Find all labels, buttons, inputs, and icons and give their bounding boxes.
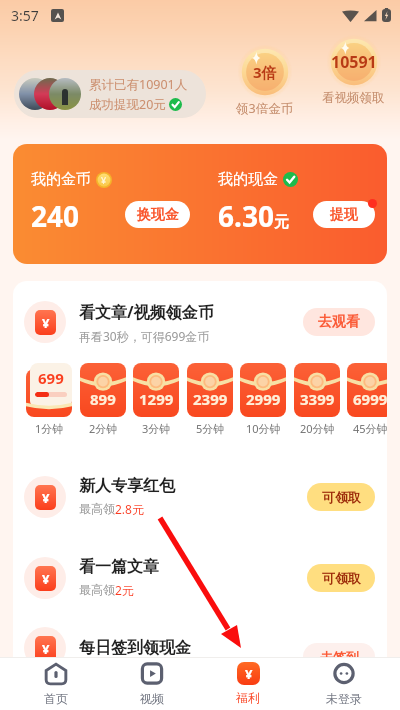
staticText: 2399 xyxy=(193,389,228,409)
button[interactable]: ¥ xyxy=(13,459,387,534)
staticText: 6999 xyxy=(353,389,387,409)
button[interactable]: 可领取 xyxy=(307,564,375,592)
staticText: 2分钟 xyxy=(89,421,118,436)
staticText: ¥ xyxy=(42,570,50,588)
staticText: 1299 xyxy=(139,389,174,409)
button[interactable]: 去签到 xyxy=(303,643,375,657)
staticText: 2999 xyxy=(246,389,281,409)
staticText: ¥ xyxy=(42,314,50,332)
button[interactable]: 未登录 xyxy=(304,662,384,706)
button[interactable]: 899 xyxy=(80,363,126,417)
staticText: 领3倍金币 xyxy=(236,100,294,117)
staticText: 再看30秒，可得699金币 xyxy=(79,328,210,344)
button[interactable]: 提现 xyxy=(313,201,375,228)
staticText: 我的现金 xyxy=(218,170,278,189)
staticText: 去观看 xyxy=(318,313,360,331)
button[interactable]: 福利 xyxy=(208,662,288,705)
staticText: 3:57 xyxy=(11,6,39,25)
button[interactable]: 2999 xyxy=(240,363,286,417)
staticText: 看一篇文章 xyxy=(79,557,159,577)
staticText: 成功提现20元 xyxy=(89,96,166,113)
button[interactable]: 可领取 xyxy=(307,483,375,511)
staticText: 看文章/视频领金币 xyxy=(79,301,214,323)
staticText: 元 xyxy=(274,213,289,232)
staticText: 10分钟 xyxy=(246,421,281,436)
staticText: 我的金币 xyxy=(31,170,91,189)
staticText: 可领取 xyxy=(322,570,361,586)
staticText: 新人专享红包 xyxy=(79,476,175,496)
other: 视频 xyxy=(140,662,164,686)
staticText: 699 xyxy=(38,368,64,388)
staticText: 5分钟 xyxy=(196,421,225,436)
staticText: 累计已有10901人 xyxy=(89,76,188,93)
staticText: 看视频领取 xyxy=(322,90,385,106)
button[interactable]: 累计已有10901人 xyxy=(14,70,206,118)
button[interactable]: 首页 xyxy=(16,662,96,706)
staticText: 最高领 xyxy=(79,501,115,516)
staticText: 每日签到领现金 xyxy=(79,638,191,657)
staticText: 1分钟 xyxy=(35,421,64,436)
staticText: 240 xyxy=(31,197,80,235)
staticText: 2.8元 xyxy=(115,501,144,517)
staticText: ¥ xyxy=(42,640,50,657)
button[interactable]: 1299 xyxy=(133,363,179,417)
staticText: 10591 xyxy=(331,51,377,73)
button[interactable]: 3倍 xyxy=(236,45,294,117)
staticText: 899 xyxy=(90,389,116,409)
staticText: 换现金 xyxy=(137,206,179,224)
button[interactable]: 10591 xyxy=(322,35,385,106)
button[interactable]: 换现金 xyxy=(125,201,190,228)
staticText: 可领取 xyxy=(322,489,361,505)
staticText: ¥ xyxy=(42,489,50,507)
staticText: 3分钟 xyxy=(142,421,171,436)
staticText: 未登录 xyxy=(326,691,362,706)
staticText: 6.30 xyxy=(218,197,274,235)
staticText: 2元 xyxy=(115,582,134,598)
button[interactable]: ¥ xyxy=(13,540,387,615)
staticText: 提现 xyxy=(330,206,358,224)
staticText: 视频 xyxy=(140,691,164,706)
button[interactable]: 视频 xyxy=(112,662,192,706)
button[interactable]: 去观看 xyxy=(303,308,375,336)
staticText: 45分钟 xyxy=(353,421,387,436)
staticText: 首页 xyxy=(44,691,68,706)
button[interactable]: 699 xyxy=(26,363,72,417)
staticText: ¥ xyxy=(245,665,253,683)
button[interactable]: ¥ xyxy=(13,610,387,657)
other: 未登录 xyxy=(332,662,356,686)
staticText: 3倍 xyxy=(253,62,277,82)
staticText: ¥ xyxy=(101,174,107,186)
staticText: 最高领 xyxy=(79,582,115,597)
staticText: 福利 xyxy=(236,690,260,705)
button[interactable]: 3399 xyxy=(294,363,340,417)
other: 首页 xyxy=(44,662,68,686)
other: 福利 xyxy=(237,662,260,685)
button[interactable]: 6999 xyxy=(347,363,387,417)
button[interactable]: 2399 xyxy=(187,363,233,417)
staticText: 去签到 xyxy=(320,649,359,657)
staticText: 3399 xyxy=(300,389,335,409)
staticText: 20分钟 xyxy=(300,421,335,436)
